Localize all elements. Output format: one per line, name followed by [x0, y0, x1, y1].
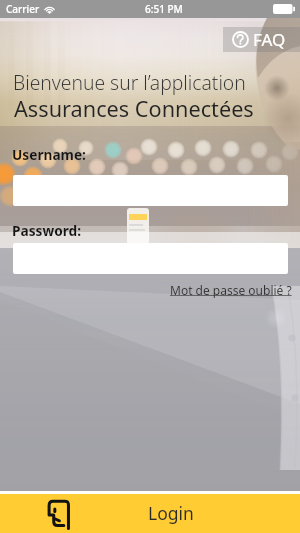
staticText: Assurances Connectées [14, 94, 254, 124]
button[interactable]: Mot de passe oublié ? [170, 282, 292, 298]
staticText: Password: [12, 221, 82, 240]
staticText: Carrier [6, 2, 40, 16]
staticText: 6:51 PM [145, 2, 183, 16]
button[interactable]: Login [0, 494, 300, 533]
staticText: FAQ [253, 28, 286, 51]
button[interactable]: FAQ [223, 27, 300, 52]
other: Face ID [48, 500, 70, 529]
staticText: Login [148, 501, 194, 525]
staticText: Bienvenue sur l’application [13, 69, 246, 95]
staticText: Username: [12, 145, 86, 164]
staticText: Mot de passe oublié ? [170, 282, 292, 298]
